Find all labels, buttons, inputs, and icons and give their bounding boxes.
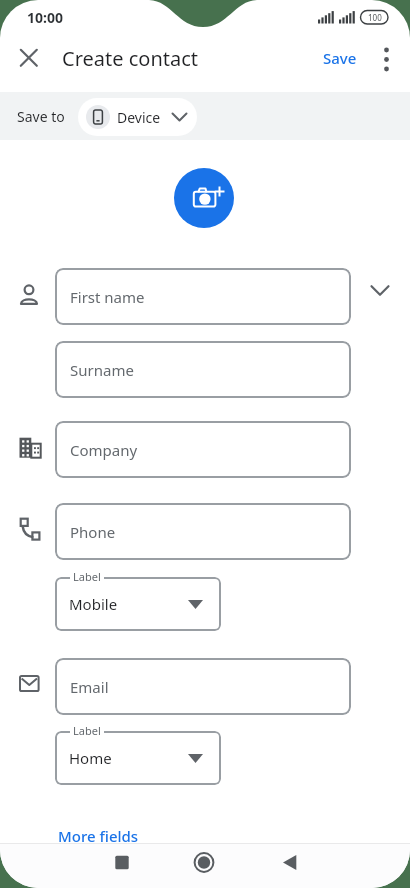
button[interactable] (364, 275, 396, 307)
staticText: Email (70, 677, 109, 697)
staticText: First name (70, 287, 145, 307)
button[interactable]: Surname (55, 341, 351, 398)
staticText: Save to (17, 107, 65, 126)
button[interactable] (268, 845, 312, 885)
button[interactable]: First name (55, 268, 351, 325)
button[interactable]: Company (55, 421, 351, 478)
button[interactable]: Email (55, 658, 351, 715)
staticText: Home (69, 748, 112, 768)
staticText: Phone (70, 522, 116, 542)
staticText: Mobile (69, 594, 118, 614)
staticText: More fields (58, 826, 139, 846)
button[interactable]: Home (55, 731, 221, 785)
staticText: Label (73, 723, 107, 738)
button[interactable] (182, 845, 226, 885)
staticText: Company (70, 440, 138, 460)
staticText: Surname (70, 360, 134, 380)
staticText: Save (323, 48, 357, 68)
button[interactable]: Save (316, 44, 364, 72)
button[interactable] (14, 43, 44, 73)
button[interactable]: Phone (55, 503, 351, 560)
button[interactable]: More fields (55, 821, 136, 851)
button[interactable]: Mobile (55, 577, 221, 631)
button[interactable] (174, 168, 234, 228)
staticText: 10:00 (27, 8, 63, 27)
button[interactable] (372, 44, 400, 72)
staticText: Create contact (62, 45, 199, 72)
button[interactable]: Device (78, 98, 197, 136)
staticText: Label (73, 569, 107, 584)
staticText: Device (117, 108, 161, 127)
button[interactable] (100, 845, 144, 885)
staticText: 100 (368, 12, 382, 23)
